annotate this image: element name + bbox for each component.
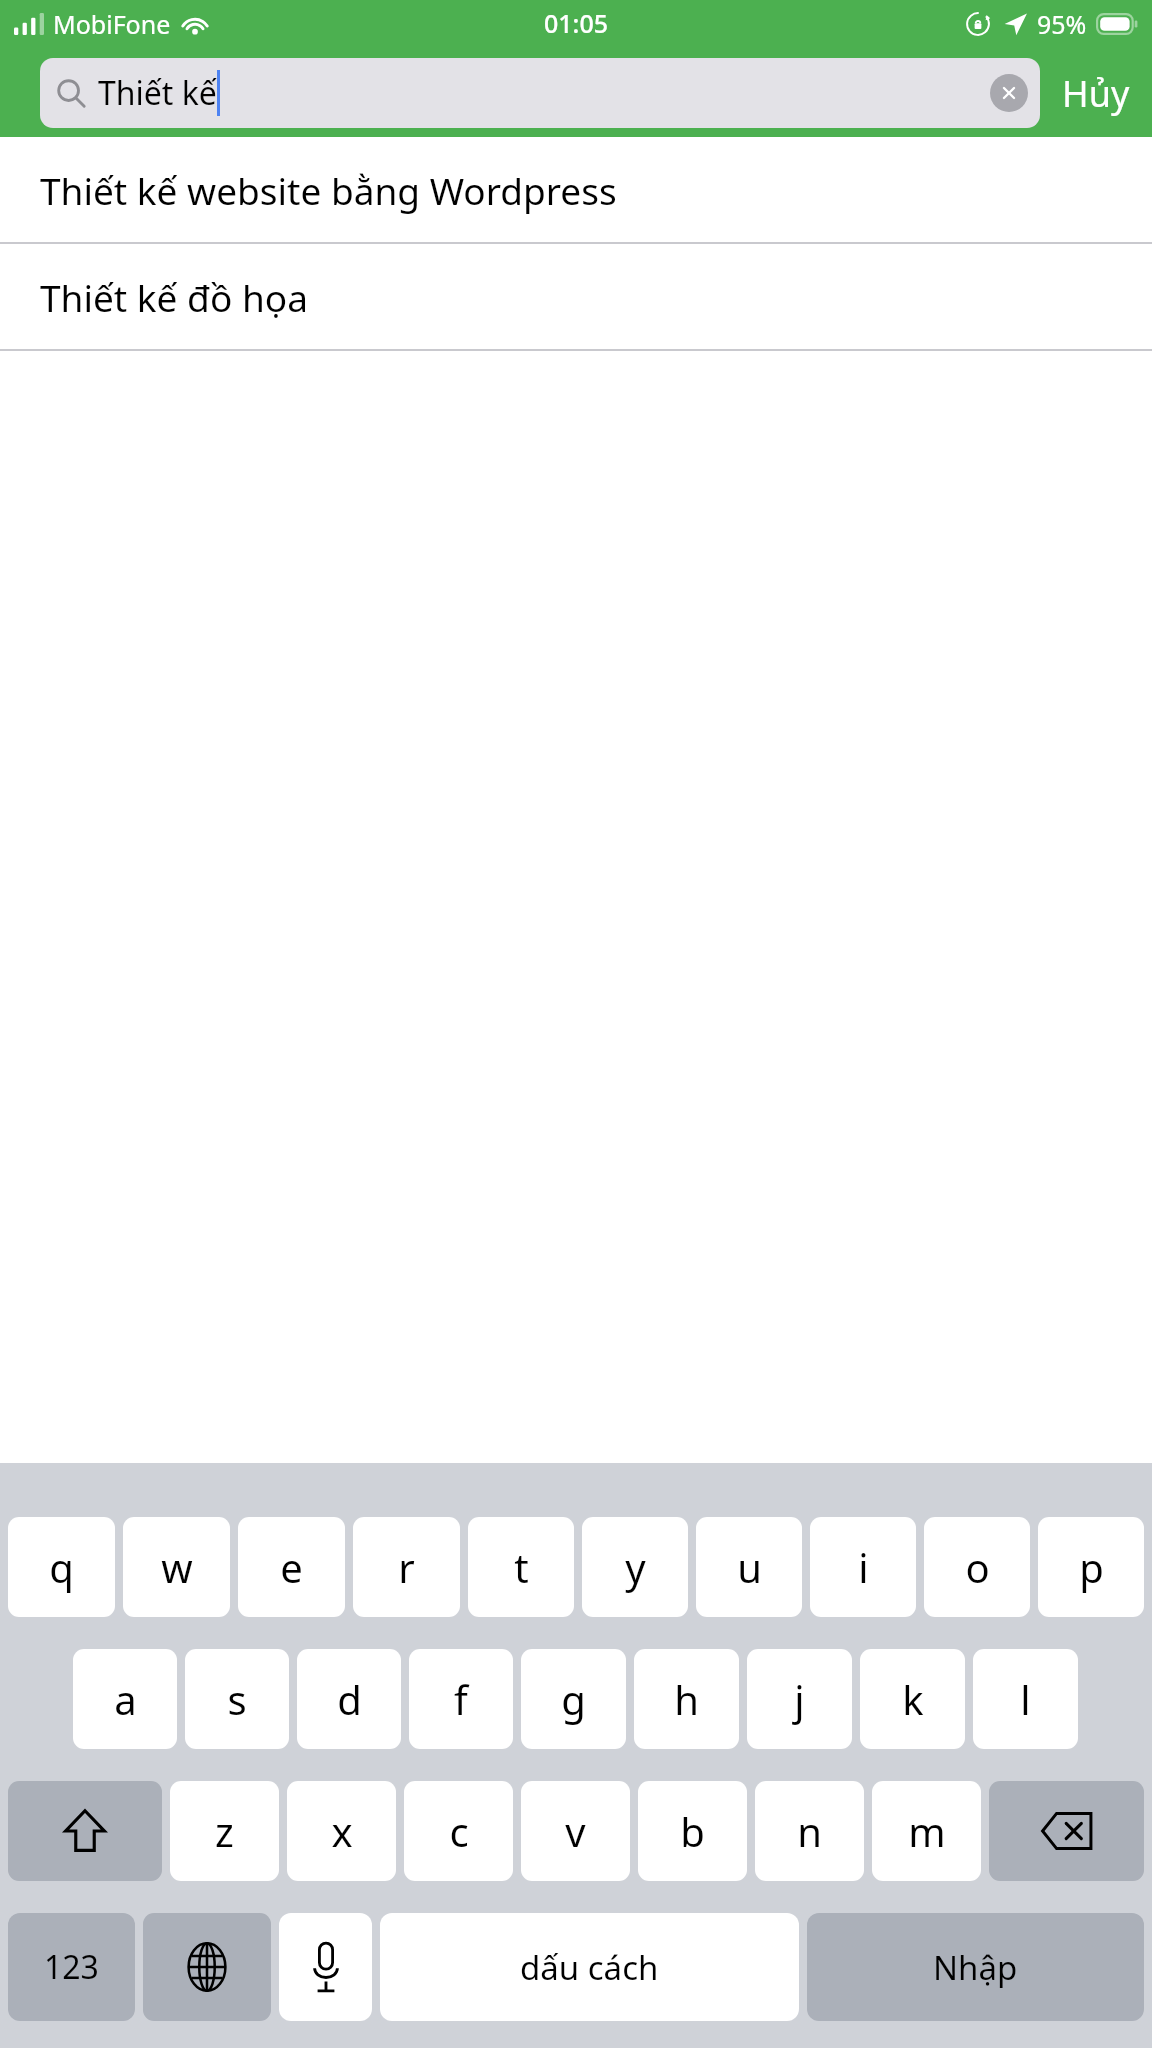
staticText: Thiết kế website bằng Wordpress <box>40 165 617 215</box>
button[interactable]: Delete <box>989 1781 1144 1881</box>
button[interactable]: l <box>973 1649 1078 1749</box>
staticText: Thiết kế <box>98 71 217 115</box>
button[interactable]: Thiết kế <box>40 58 1040 128</box>
button[interactable]: h <box>634 1649 739 1749</box>
button[interactable]: Dictation <box>279 1913 372 2021</box>
button[interactable]: w <box>123 1517 230 1617</box>
button[interactable]: q <box>8 1517 115 1617</box>
staticText: k <box>902 1672 924 1726</box>
button[interactable]: 123 <box>8 1913 135 2021</box>
button[interactable]: m <box>872 1781 981 1881</box>
button[interactable]: o <box>924 1517 1030 1617</box>
button[interactable]: e <box>238 1517 345 1617</box>
button[interactable]: t <box>468 1517 574 1617</box>
button[interactable]: n <box>755 1781 864 1881</box>
button[interactable]: y <box>582 1517 688 1617</box>
staticText: n <box>797 1804 822 1858</box>
button[interactable]: g <box>521 1649 626 1749</box>
staticText: h <box>674 1672 699 1726</box>
staticText: a <box>114 1672 137 1726</box>
button[interactable]: v <box>521 1781 630 1881</box>
staticText: dấu cách <box>520 1945 659 1990</box>
button[interactable]: Shift <box>8 1781 162 1881</box>
staticText: b <box>680 1804 705 1858</box>
staticText: y <box>625 1540 646 1594</box>
staticText: t <box>514 1540 529 1594</box>
staticText: 123 <box>44 1945 99 1989</box>
staticText: q <box>49 1540 74 1594</box>
button[interactable]: i <box>810 1517 916 1617</box>
staticText: w <box>161 1540 193 1594</box>
button[interactable]: Thiết kế website bằng Wordpress <box>0 137 1152 242</box>
staticText: d <box>337 1672 362 1726</box>
button[interactable]: dấu cách <box>380 1913 799 2021</box>
button[interactable]: f <box>409 1649 513 1749</box>
staticText: x <box>331 1804 353 1858</box>
button[interactable]: Change keyboard <box>143 1913 271 2021</box>
button[interactable]: p <box>1038 1517 1144 1617</box>
button[interactable]: Clear text <box>990 74 1028 112</box>
staticText: Nhập <box>933 1945 1018 1990</box>
button[interactable]: j <box>747 1649 852 1749</box>
staticText: 01:05 <box>544 6 609 40</box>
button[interactable]: r <box>353 1517 460 1617</box>
button[interactable]: b <box>638 1781 747 1881</box>
staticText: m <box>908 1804 946 1858</box>
staticText: p <box>1079 1540 1104 1594</box>
button[interactable]: Nhập <box>807 1913 1144 2021</box>
staticText: z <box>215 1804 234 1858</box>
button[interactable]: k <box>860 1649 965 1749</box>
button[interactable]: a <box>73 1649 177 1749</box>
staticText: s <box>227 1672 247 1726</box>
staticText: u <box>737 1540 762 1594</box>
button[interactable]: c <box>404 1781 513 1881</box>
staticText: c <box>449 1804 469 1858</box>
button[interactable]: d <box>297 1649 401 1749</box>
button[interactable]: u <box>696 1517 802 1617</box>
staticText: j <box>794 1672 805 1726</box>
staticText: o <box>965 1540 990 1594</box>
button[interactable]: z <box>170 1781 279 1881</box>
button[interactable]: x <box>287 1781 396 1881</box>
button[interactable]: Hủy <box>1062 58 1130 128</box>
staticText: i <box>858 1540 869 1594</box>
button[interactable]: s <box>185 1649 289 1749</box>
staticText: v <box>565 1804 586 1858</box>
staticText: e <box>280 1540 303 1594</box>
staticText: r <box>398 1540 415 1594</box>
staticText: 95% <box>1037 7 1087 41</box>
button[interactable]: Thiết kế đồ họa <box>0 244 1152 349</box>
staticText: Hủy <box>1062 69 1130 118</box>
staticText: Thiết kế đồ họa <box>40 272 308 322</box>
staticText: MobiFone <box>53 7 171 41</box>
staticText: l <box>1020 1672 1031 1726</box>
staticText: f <box>454 1672 468 1726</box>
staticText: g <box>561 1672 586 1726</box>
